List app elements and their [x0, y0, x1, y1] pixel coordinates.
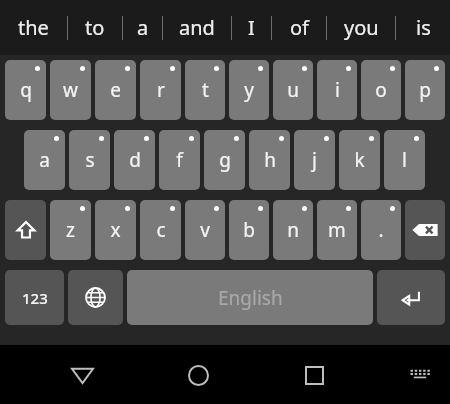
button[interactable]: and [163, 0, 231, 55]
button[interactable]: 123 [5, 270, 64, 325]
staticText: y [244, 77, 254, 103]
staticText: is [416, 14, 431, 41]
staticText: you [344, 14, 379, 41]
button[interactable]: Change language [68, 270, 123, 325]
staticText: d [129, 147, 141, 173]
button[interactable]: p [405, 60, 445, 120]
staticText: x [110, 217, 121, 243]
staticText: e [110, 77, 121, 103]
button[interactable]: o [361, 60, 401, 120]
button[interactable]: I [232, 0, 271, 55]
button[interactable]: Enter [377, 270, 445, 325]
staticText: h [264, 147, 276, 173]
staticText: a [39, 147, 50, 173]
button[interactable]: is [396, 0, 450, 55]
staticText: r [157, 77, 165, 103]
staticText: g [219, 147, 231, 173]
staticText: l [402, 147, 407, 173]
button[interactable]: n [273, 200, 313, 260]
staticText: t [202, 77, 209, 103]
staticText: w [63, 77, 78, 103]
button[interactable]: b [229, 200, 269, 260]
button[interactable]: the [0, 0, 67, 55]
button[interactable]: to [68, 0, 122, 55]
button[interactable]: d [114, 130, 155, 190]
button[interactable]: f [159, 130, 200, 190]
button[interactable]: a [24, 130, 65, 190]
staticText: o [375, 77, 387, 103]
button[interactable]: of [272, 0, 326, 55]
staticText: to [85, 14, 105, 41]
staticText: i [335, 77, 340, 103]
button[interactable]: l [384, 130, 425, 190]
staticText: and [179, 14, 215, 41]
button[interactable]: z [50, 200, 91, 260]
button[interactable]: h [249, 130, 290, 190]
staticText: a [137, 14, 149, 41]
button[interactable]: English [127, 270, 373, 325]
button[interactable]: j [294, 130, 335, 190]
button[interactable]: k [339, 130, 380, 190]
button[interactable]: c [140, 200, 181, 260]
staticText: 123 [22, 288, 48, 308]
staticText: v [200, 217, 210, 243]
button[interactable]: i [317, 60, 357, 120]
button[interactable]: u [273, 60, 313, 120]
button[interactable]: . [361, 200, 401, 260]
button[interactable]: s [69, 130, 110, 190]
staticText: n [287, 217, 299, 243]
staticText: . [378, 217, 384, 243]
button[interactable]: Switch keyboard [396, 351, 444, 399]
button[interactable]: e [95, 60, 136, 120]
button[interactable]: Shift [5, 200, 46, 260]
button[interactable]: t [185, 60, 225, 120]
staticText: q [20, 77, 32, 103]
button[interactable]: v [185, 200, 225, 260]
button[interactable]: Hide keyboard [56, 349, 108, 401]
staticText: I [248, 14, 255, 41]
staticText: c [156, 217, 166, 243]
staticText: f [176, 147, 183, 173]
staticText: m [328, 217, 346, 243]
button[interactable]: x [95, 200, 136, 260]
staticText: s [85, 147, 95, 173]
staticText: the [18, 14, 49, 41]
staticText: j [312, 147, 317, 173]
button[interactable]: Home [172, 349, 224, 401]
button[interactable]: m [317, 200, 357, 260]
button[interactable]: Backspace [405, 200, 445, 260]
staticText: k [354, 147, 365, 173]
staticText: of [290, 14, 309, 41]
button[interactable]: w [50, 60, 91, 120]
staticText: z [66, 217, 75, 243]
button[interactable]: y [229, 60, 269, 120]
staticText: English [218, 285, 283, 311]
button[interactable]: you [327, 0, 395, 55]
button[interactable]: Recent apps [288, 349, 340, 401]
button[interactable]: q [5, 60, 46, 120]
button[interactable]: r [140, 60, 181, 120]
staticText: b [243, 217, 255, 243]
button[interactable]: a [123, 0, 162, 55]
staticText: p [419, 77, 431, 103]
button[interactable]: g [204, 130, 245, 190]
staticText: u [287, 77, 299, 103]
